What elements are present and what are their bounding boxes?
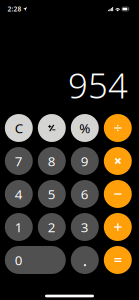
button[interactable]: Plus [104, 213, 132, 241]
button[interactable]: Equals [104, 246, 132, 274]
button[interactable]: % [71, 114, 99, 142]
button[interactable]: 1 [5, 213, 33, 241]
button[interactable]: 3 [71, 213, 99, 241]
button[interactable]: 4 [5, 180, 33, 208]
button[interactable]: 8 [38, 147, 66, 175]
staticText: 4 [15, 185, 23, 203]
staticText: % [79, 119, 90, 137]
staticText: 8 [48, 152, 56, 170]
staticText: 3 [81, 218, 89, 236]
staticText: 2:28 [7, 5, 21, 13]
staticText: . [83, 249, 87, 271]
staticText: 9 [81, 152, 89, 170]
staticText: 5 [48, 185, 56, 203]
button[interactable]: 6 [71, 180, 99, 208]
staticText: 1 [15, 218, 23, 236]
button[interactable]: 9 [71, 147, 99, 175]
staticText: C [15, 119, 23, 137]
button[interactable]: 0 [5, 246, 66, 274]
staticText: 954 [68, 62, 128, 108]
button[interactable]: . [71, 246, 99, 274]
staticText: 6 [81, 185, 89, 203]
button[interactable]: 2 [38, 213, 66, 241]
button[interactable]: 5 [38, 180, 66, 208]
staticText: 0 [15, 251, 23, 269]
button[interactable]: 7 [5, 147, 33, 175]
button[interactable]: C [5, 114, 33, 142]
button[interactable]: Minus [104, 180, 132, 208]
button[interactable]: Multiply [104, 147, 132, 175]
staticText: 7 [15, 152, 23, 170]
button[interactable]: Divide [104, 114, 132, 142]
button[interactable]: Plus minus [38, 114, 66, 142]
staticText: 2 [48, 218, 56, 236]
